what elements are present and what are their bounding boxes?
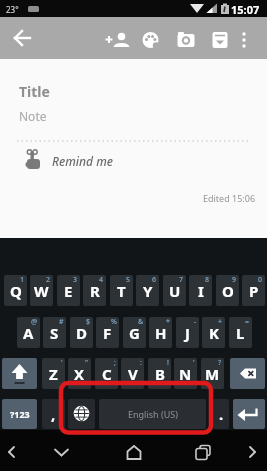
- staticText: V: [128, 364, 138, 384]
- staticText: 5: [126, 275, 131, 285]
- staticText: ?123: [10, 408, 30, 420]
- staticText: D: [76, 323, 87, 343]
- button[interactable]: G: [123, 317, 146, 348]
- button[interactable]: [2, 358, 37, 389]
- staticText: .: [219, 404, 224, 424]
- button[interactable]: English (US): [99, 399, 206, 429]
- staticText: R: [90, 281, 100, 301]
- staticText: @: [31, 317, 38, 327]
- button[interactable]: [230, 358, 265, 389]
- staticText: W: [34, 281, 49, 301]
- button[interactable]: [192, 440, 216, 464]
- staticText: 4: [99, 275, 104, 285]
- button[interactable]: E: [57, 275, 80, 306]
- button[interactable]: Y: [136, 275, 159, 306]
- button[interactable]: [122, 440, 146, 464]
- button[interactable]: A: [17, 317, 40, 348]
- staticText: N: [179, 364, 192, 384]
- staticText: =: [245, 317, 250, 327]
- staticText: ;: [114, 358, 116, 368]
- staticText: T: [117, 281, 126, 301]
- staticText: K: [209, 323, 219, 343]
- button[interactable]: Remind me: [17, 147, 137, 175]
- staticText: G: [129, 323, 140, 343]
- button[interactable]: K: [202, 317, 225, 348]
- staticText: S: [50, 323, 59, 343]
- button[interactable]: I: [189, 275, 212, 306]
- staticText: C: [102, 364, 112, 384]
- button[interactable]: C: [95, 358, 118, 389]
- staticText: U: [169, 281, 181, 301]
- button[interactable]: P: [242, 275, 265, 306]
- staticText: 23°: [6, 4, 19, 15]
- button[interactable]: R: [83, 275, 106, 306]
- staticText: ": [85, 358, 89, 368]
- staticText: M: [205, 364, 220, 384]
- staticText: +: [218, 317, 223, 327]
- staticText: I: [198, 281, 204, 301]
- staticText: O: [222, 281, 234, 301]
- button[interactable]: V: [121, 358, 144, 389]
- staticText: 15:07: [231, 2, 260, 17]
- staticText: ': [193, 358, 195, 368]
- staticText: 8: [205, 275, 210, 285]
- button[interactable]: X: [68, 358, 91, 389]
- staticText: &: [138, 317, 144, 327]
- button[interactable]: S: [43, 317, 66, 348]
- button[interactable]: [233, 399, 265, 429]
- staticText: English (US): [128, 408, 178, 420]
- button[interactable]: Z: [42, 358, 65, 389]
- staticText: ,: [51, 404, 56, 424]
- staticText: !: [167, 358, 169, 368]
- button[interactable]: [50, 440, 74, 464]
- button[interactable]: W: [30, 275, 53, 306]
- button[interactable]: N: [174, 358, 197, 389]
- staticText: 1: [20, 275, 25, 285]
- staticText: ': [61, 358, 63, 368]
- staticText: *: [166, 317, 170, 327]
- staticText: Title: [19, 82, 50, 101]
- button[interactable]: D: [70, 317, 93, 348]
- staticText: %: [111, 317, 117, 327]
- button[interactable]: [104, 27, 130, 53]
- staticText: $: [86, 317, 91, 327]
- button[interactable]: F: [96, 317, 119, 348]
- staticText: 7: [179, 275, 184, 285]
- staticText: 3: [73, 275, 78, 285]
- staticText: P: [249, 281, 259, 301]
- button[interactable]: O: [216, 275, 239, 306]
- staticText: :: [140, 358, 142, 368]
- button[interactable]: B: [148, 358, 171, 389]
- button[interactable]: [68, 399, 95, 429]
- staticText: Z: [49, 364, 58, 384]
- button[interactable]: Q: [4, 275, 27, 306]
- button[interactable]: [2, 440, 26, 464]
- button[interactable]: U: [163, 275, 186, 306]
- staticText: L: [236, 323, 245, 343]
- staticText: B: [155, 364, 165, 384]
- button[interactable]: ,: [42, 399, 65, 429]
- staticText: 6: [152, 275, 157, 285]
- staticText: ?: [218, 358, 222, 368]
- button[interactable]: M: [201, 358, 224, 389]
- button[interactable]: L: [229, 317, 252, 348]
- button[interactable]: [243, 440, 267, 464]
- staticText: X: [74, 364, 85, 384]
- button[interactable]: ?123: [2, 399, 37, 429]
- staticText: A: [23, 323, 34, 343]
- staticText: #: [59, 317, 64, 327]
- staticText: Note: [19, 108, 47, 124]
- button[interactable]: J: [176, 317, 199, 348]
- staticText: H: [155, 323, 167, 343]
- staticText: 9: [232, 275, 237, 285]
- button[interactable]: T: [110, 275, 133, 306]
- staticText: 0: [258, 275, 263, 285]
- button[interactable]: H: [149, 317, 172, 348]
- staticText: Y: [143, 281, 153, 301]
- staticText: Edited 15:06: [203, 192, 256, 204]
- staticText: J: [185, 323, 190, 343]
- button[interactable]: .: [213, 399, 229, 429]
- button[interactable]: [8, 23, 38, 53]
- staticText: F: [103, 323, 112, 343]
- staticText: 2: [46, 275, 51, 285]
